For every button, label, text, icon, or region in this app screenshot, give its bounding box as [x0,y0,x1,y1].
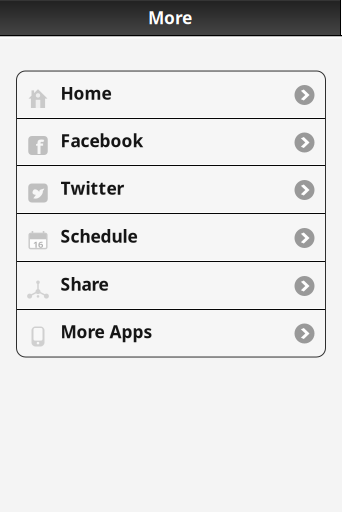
button[interactable]: Twitter [16,166,325,214]
button[interactable]: Share [16,262,325,310]
staticText: More [148,6,192,29]
staticText: Home [60,81,111,104]
button[interactable]: 16 [16,214,325,262]
staticText: Twitter [60,176,124,199]
staticText: Share [60,272,108,295]
staticText: More Apps [60,320,152,343]
button[interactable]: More Apps [16,310,325,357]
button[interactable]: f [16,119,325,166]
staticText: Schedule [60,224,137,247]
staticText: f [35,133,43,160]
button[interactable]: Home [16,71,325,119]
staticText: Facebook [60,129,143,152]
staticText: 16 [33,238,43,250]
